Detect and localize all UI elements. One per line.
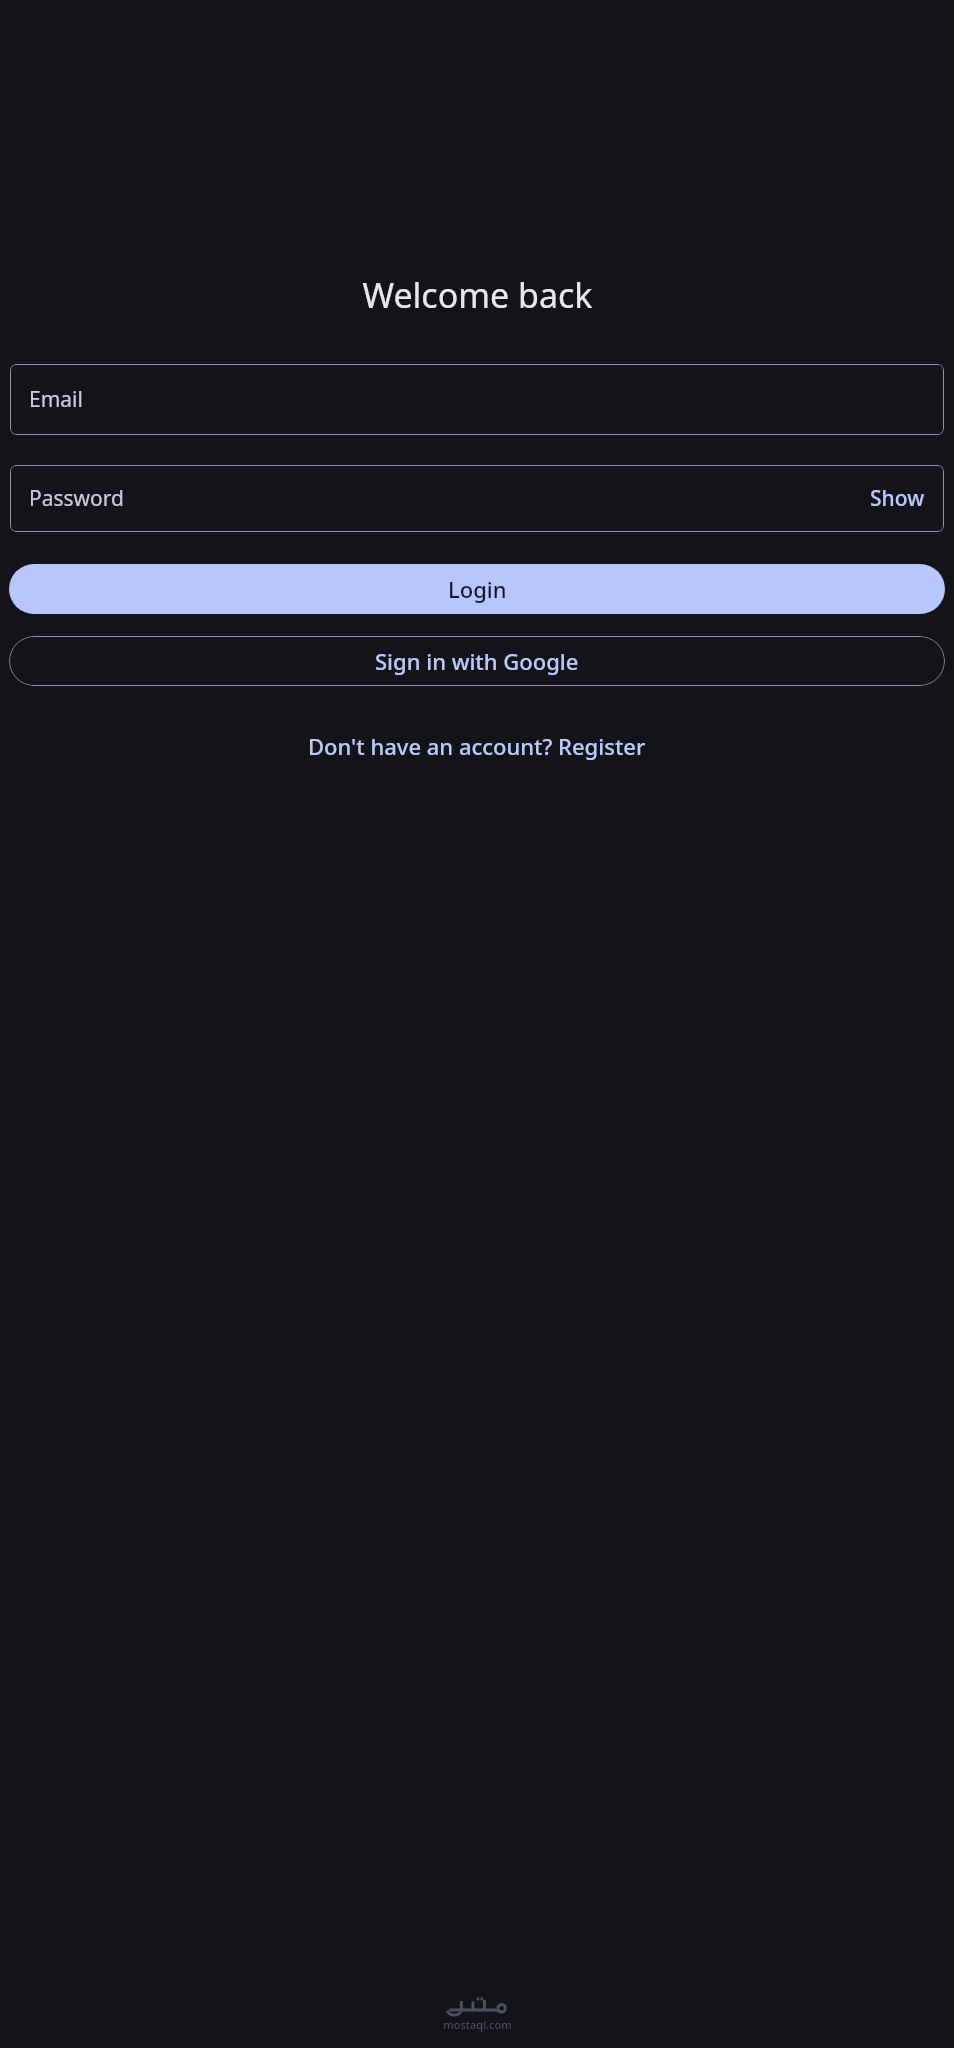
- staticText: Sign in with Google: [375, 646, 579, 676]
- staticText: Show: [870, 484, 925, 513]
- staticText: Email: [29, 385, 83, 414]
- staticText: Welcome back: [362, 272, 593, 318]
- button[interactable]: Don't have an account? Register: [298, 725, 656, 767]
- button[interactable]: Password: [29, 484, 124, 513]
- button[interactable]: Email: [10, 364, 944, 435]
- staticText: Login: [448, 574, 507, 604]
- button[interactable]: Login: [9, 564, 945, 614]
- staticText: Don't have an account? Register: [308, 731, 646, 761]
- button[interactable]: Show: [866, 480, 929, 517]
- staticText: mostaql.com: [443, 2017, 512, 2032]
- button[interactable]: Sign in with Google: [9, 636, 945, 686]
